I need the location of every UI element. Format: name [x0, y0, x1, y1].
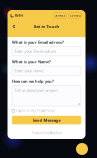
staticText: I agree to the Privacy Policy: [16, 109, 54, 112]
staticText: Enter your Email adress: [14, 48, 56, 54]
staticText: Powered by Webflow: [31, 131, 61, 135]
staticText: What is your Email adress?: [12, 40, 64, 45]
button[interactable]: Services: [53, 13, 67, 18]
button[interactable]: Send Message: [12, 116, 81, 124]
button[interactable]: Contact: [68, 13, 82, 18]
staticText: How can we help you?: [12, 79, 54, 84]
staticText: Tell us about your project: [14, 87, 57, 93]
staticText: Contact: [70, 14, 81, 17]
staticText: Enter your name: [14, 68, 43, 73]
button[interactable]: Back: [11, 23, 17, 29]
staticText: studio: [14, 14, 23, 17]
staticText: Get in Touch: [33, 24, 59, 29]
staticText: Services: [55, 14, 65, 17]
staticText: Send Message: [32, 117, 60, 123]
staticText: What is your Name?: [12, 59, 51, 64]
